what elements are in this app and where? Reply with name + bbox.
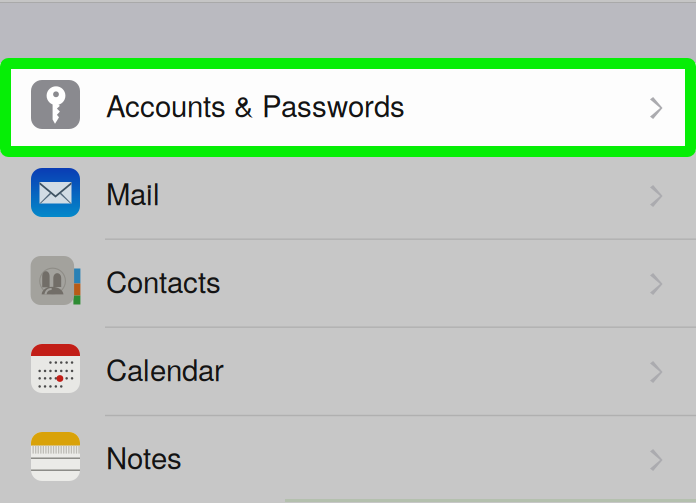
staticText: Contacts — [106, 259, 221, 301]
button[interactable]: Calendar — [0, 327, 696, 415]
staticText: Accounts & Passwords — [106, 83, 405, 125]
staticText: Mail — [106, 171, 160, 213]
button[interactable]: Accounts & Passwords — [0, 63, 696, 151]
button[interactable]: Contacts — [0, 239, 696, 327]
button[interactable]: Mail — [0, 151, 696, 239]
button[interactable]: Notes — [0, 415, 696, 503]
staticText: Calendar — [106, 347, 224, 389]
staticText: Notes — [106, 435, 182, 477]
